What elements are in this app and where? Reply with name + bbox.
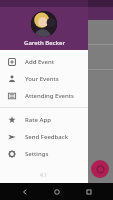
- staticText: Send Feedback: [25, 133, 69, 141]
- button[interactable]: Attending Events: [0, 87, 88, 104]
- button[interactable]: Rate App: [0, 111, 88, 128]
- button[interactable]: Send Feedback: [0, 128, 88, 145]
- staticText: Add Event: [25, 58, 54, 66]
- staticText: Settings: [25, 150, 49, 158]
- button[interactable]: Gareth Becker: [0, 7, 88, 50]
- button[interactable]: Add Event: [0, 53, 88, 70]
- button[interactable]: Settings: [0, 145, 88, 162]
- button[interactable]: Your Events: [0, 70, 88, 87]
- button[interactable]: Refresh: [91, 160, 109, 178]
- staticText: Your Events: [25, 75, 59, 83]
- staticText: Attending Events: [25, 92, 75, 100]
- button[interactable]: Back: [17, 184, 32, 199]
- staticText: Rate App: [25, 116, 51, 124]
- staticText: 4.1: [40, 172, 48, 179]
- button[interactable]: Recent apps: [81, 184, 96, 199]
- staticText: Gareth Becker: [24, 39, 65, 47]
- staticText: 126 m: [48, 54, 63, 61]
- staticText: 20 km: [48, 29, 63, 36]
- button[interactable]: Home: [49, 184, 64, 199]
